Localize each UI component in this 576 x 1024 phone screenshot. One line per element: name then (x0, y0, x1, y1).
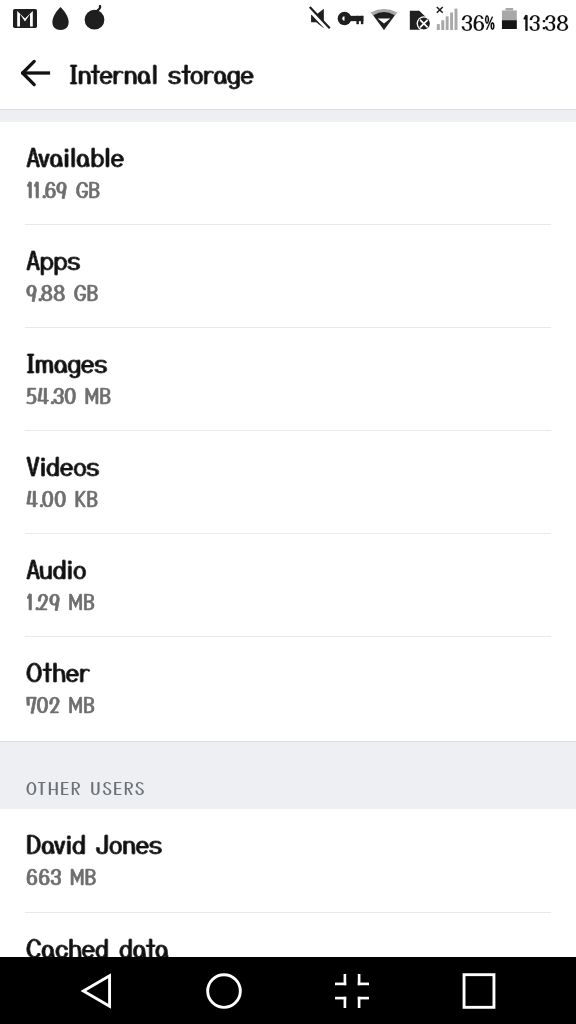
button[interactable]: Cached data (0, 913, 576, 1015)
staticText: Other (26, 653, 91, 689)
staticText: 702 MB (26, 690, 96, 719)
staticText: Available (26, 138, 125, 174)
staticText: Videos (26, 447, 100, 483)
staticText: Internal storage (69, 55, 255, 91)
staticText: Available (26, 138, 125, 174)
staticText: 663 MB (26, 862, 98, 891)
button[interactable]: Images (0, 328, 576, 430)
staticText: Apps (26, 241, 81, 277)
button[interactable]: Home (194, 961, 254, 1021)
staticText: Cached data (26, 929, 169, 965)
button[interactable]: Apps (0, 225, 576, 327)
staticText: 9.88 GB (26, 278, 99, 307)
staticText: Apps (26, 241, 81, 277)
button[interactable]: Videos (0, 431, 576, 533)
staticText: 9.88 GB (26, 278, 99, 307)
staticText: 11.69 GB (26, 175, 101, 204)
button[interactable]: Shrink screen (322, 961, 382, 1021)
staticText: 54.30 MB (26, 381, 112, 410)
staticText: 13:38 (522, 7, 569, 37)
button[interactable]: Other (0, 637, 576, 741)
button[interactable]: David Jones (0, 809, 576, 912)
staticText: Audio (26, 550, 87, 586)
button[interactable]: Audio (0, 534, 576, 636)
staticText: 54.30 MB (26, 381, 112, 410)
staticText: 663 MB (26, 862, 98, 891)
staticText: 4.00 KB (26, 484, 99, 513)
staticText: Images (26, 344, 108, 380)
staticText: Images (26, 344, 108, 380)
staticText: 702 MB (26, 690, 96, 719)
staticText: 4.00 KB (26, 484, 99, 513)
button[interactable]: Available (0, 122, 576, 224)
staticText: Cached data (26, 929, 169, 965)
staticText: David Jones (26, 825, 163, 861)
button[interactable]: Recents (449, 961, 509, 1021)
staticText: Internal storage (69, 55, 255, 91)
button[interactable]: Back (10, 48, 60, 98)
staticText: Audio (26, 550, 87, 586)
staticText: 11.69 GB (26, 175, 101, 204)
staticText: 1.29 MB (26, 587, 96, 616)
staticText: 1.29 MB (26, 587, 96, 616)
staticText: Other (26, 653, 91, 689)
button[interactable]: Back (67, 961, 127, 1021)
staticText: David Jones (26, 825, 163, 861)
staticText: Videos (26, 447, 100, 483)
staticText: 36% (461, 7, 496, 37)
staticText: OTHER USERS (26, 776, 147, 800)
